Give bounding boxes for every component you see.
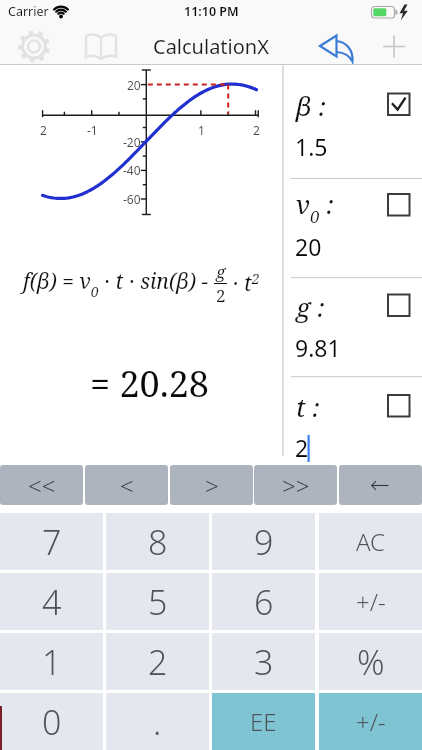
staticText: CalculationX xyxy=(153,33,269,60)
staticText: . xyxy=(153,699,162,745)
staticText: AC xyxy=(356,525,386,558)
staticText: v0 : xyxy=(296,186,334,224)
staticText: 11:10 PM xyxy=(184,3,239,20)
staticText: EE xyxy=(250,705,277,738)
staticText: +/- xyxy=(356,585,386,618)
staticText: g xyxy=(216,260,226,283)
staticText: f(β) = v0 · t · sin(β) − xyxy=(23,267,214,301)
staticText: -60 xyxy=(123,191,141,207)
staticText: -20 xyxy=(123,134,141,150)
staticText: 2 xyxy=(253,122,260,138)
staticText: g : xyxy=(296,289,325,324)
staticText: 0 xyxy=(42,699,62,745)
staticText: 6 xyxy=(254,579,274,625)
staticText: -1 xyxy=(87,122,98,138)
staticText: 2 xyxy=(216,284,226,307)
staticText: 20 xyxy=(127,77,141,93)
staticText: 2 xyxy=(40,122,47,138)
staticText: 1 xyxy=(42,639,62,685)
staticText: < xyxy=(120,469,134,502)
staticText: 8 xyxy=(148,519,168,565)
staticText: +/- xyxy=(356,705,386,738)
staticText: β : xyxy=(296,88,326,123)
staticText: = 20.28 xyxy=(90,359,209,408)
staticText: 5 xyxy=(148,579,168,625)
staticText: << xyxy=(28,469,56,502)
staticText: > xyxy=(205,469,219,502)
staticText: · t2 xyxy=(227,269,260,298)
staticText: 4 xyxy=(42,579,62,625)
staticText: 7 xyxy=(42,519,62,565)
staticText: >> xyxy=(282,469,310,502)
staticText: 2 xyxy=(148,639,168,685)
staticText: 1 xyxy=(198,122,205,138)
staticText: 20 xyxy=(295,231,322,261)
staticText: % xyxy=(357,639,385,685)
staticText: Carrier xyxy=(8,3,49,20)
staticText: 2 xyxy=(295,432,309,462)
staticText: 3 xyxy=(254,639,274,685)
staticText: -40 xyxy=(123,162,141,178)
staticText: ← xyxy=(370,471,391,499)
staticText: t : xyxy=(296,389,320,424)
staticText: 1.5 xyxy=(295,131,328,161)
staticText: 9 xyxy=(254,519,274,565)
staticText: 9.81 xyxy=(295,332,341,362)
